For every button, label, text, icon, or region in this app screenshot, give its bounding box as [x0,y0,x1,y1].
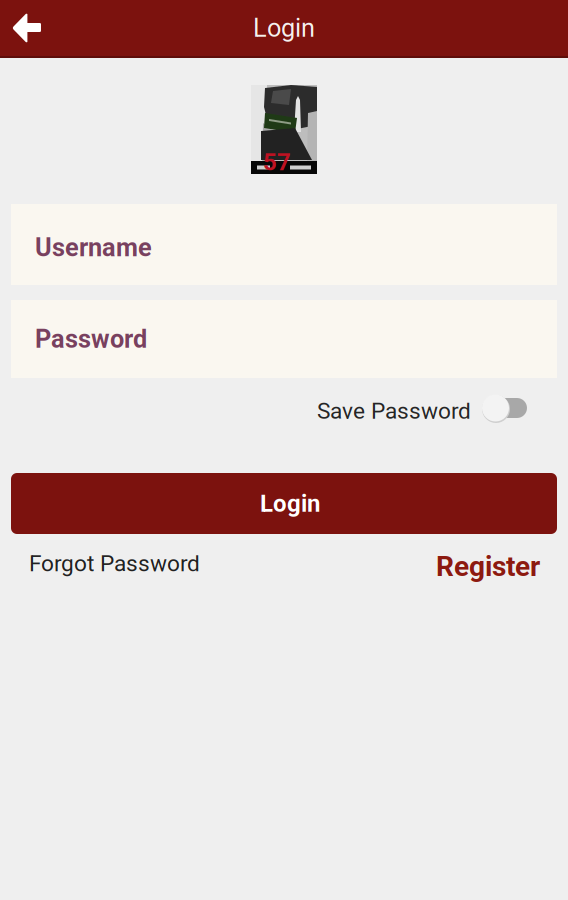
button[interactable]: Back [0,0,60,56]
staticText: Save Password [317,398,471,424]
staticText: Password [35,324,147,354]
button[interactable]: Forgot Password [29,549,200,584]
staticText: Register [436,550,540,583]
staticText: Login [260,489,320,517]
staticText: Forgot Password [29,550,200,577]
staticText: Login [253,13,315,43]
staticText: Username [35,233,152,262]
button[interactable]: Register [436,543,540,590]
button[interactable]: Save Password [482,385,531,431]
staticText: 57 [263,148,291,176]
button[interactable]: Login [0,473,568,534]
